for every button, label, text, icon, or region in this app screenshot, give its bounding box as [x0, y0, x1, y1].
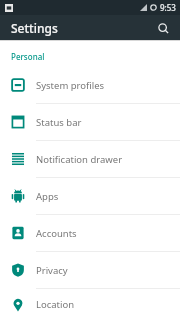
staticText: Apps [36, 190, 59, 203]
staticText: Personal [11, 51, 45, 62]
button[interactable]: Accounts [0, 215, 180, 252]
staticText: Privacy [36, 264, 68, 277]
staticText: Location [36, 298, 75, 311]
button[interactable]: Location [0, 289, 180, 320]
button[interactable]: Apps [0, 178, 180, 215]
staticText: Notification drawer [36, 153, 123, 166]
button[interactable]: System profiles [0, 67, 180, 104]
staticText: 9:53 [160, 2, 176, 13]
button[interactable]: Notification drawer [0, 141, 180, 178]
staticText: Status bar [36, 116, 82, 129]
staticText: Accounts [36, 227, 77, 240]
staticText: Settings [11, 20, 58, 36]
button[interactable]: Status bar [0, 104, 180, 141]
button[interactable]: Privacy [0, 252, 180, 289]
staticText: System profiles [36, 79, 105, 92]
button[interactable]: Search [152, 17, 174, 39]
